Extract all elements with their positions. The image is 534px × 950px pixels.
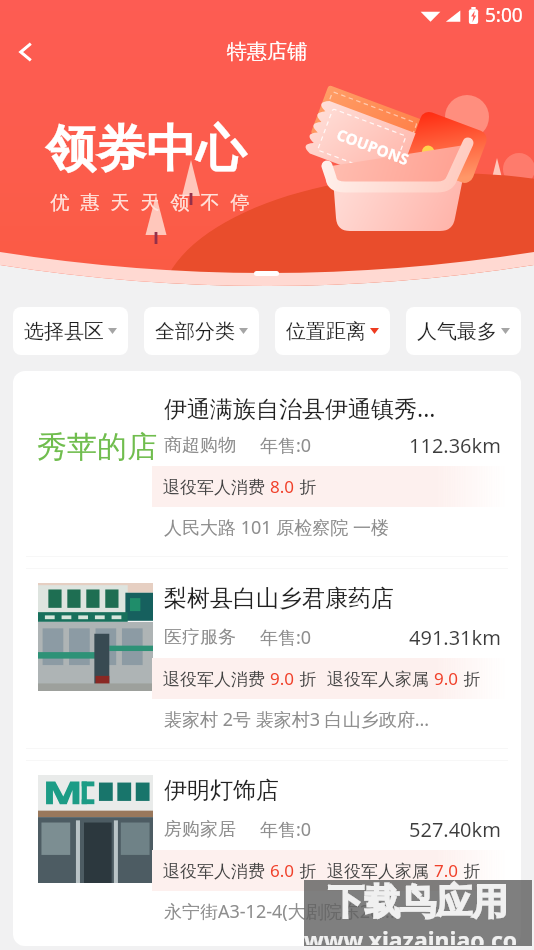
button[interactable]: 人气最多 [406,307,521,355]
staticText: 年售:0 [260,817,312,842]
staticText: 伊通满族自治县伊通镇秀... [164,392,436,423]
staticText: 491.31km [409,624,501,651]
staticText: 人气最多 [417,319,497,344]
staticText: 永宁街A3-12-4(大剧院东20... [164,899,395,924]
staticText: www.xiazainiao.com [304,924,532,945]
button[interactable]: 秀苹的店 [26,377,508,556]
staticText: 退役军人消费 [163,859,270,882]
staticText: 梨树县白山乡君康药店 [164,584,394,613]
staticText: 退役军人家属 [327,859,434,882]
staticText: 退役军人消费 [163,475,270,498]
staticText: 裴家村 2号 裴家村3 白山乡政府... [164,707,430,732]
staticText: 年售:0 [260,433,312,458]
staticText: 退役军人消费 [163,667,270,690]
button[interactable]: 退役军人消费 [26,761,508,940]
staticText: 全部分类 [155,319,235,344]
staticText: 折 [295,667,317,690]
staticText: 位置距离 [286,319,366,344]
staticText: 房购家居 [164,818,236,841]
button[interactable]: Back [4,30,48,74]
staticText: 5:00 [485,2,523,28]
staticText: 选择县区 [24,319,104,344]
staticText: 6.0 [270,859,295,882]
staticText: 伊明灯饰店 [164,776,279,805]
button[interactable]: 选择县区 [13,307,128,355]
button[interactable]: 退役军人消费 [26,569,508,748]
button[interactable]: 位置距离 [275,307,390,355]
staticText: 7.0 [434,859,459,882]
staticText: 折 [459,859,481,882]
staticText: 折 [295,859,317,882]
staticText: 527.40km [409,816,501,843]
staticText: 8.0 [270,475,295,498]
staticText: 112.36km [409,432,501,459]
staticText: 下载鸟应用 [328,879,508,924]
staticText: 领券中心 [46,118,246,181]
staticText: 特惠店铺 [227,39,307,64]
staticText: 折 [459,667,481,690]
staticText: 9.0 [434,667,459,690]
staticText: 优惠天天领不停 [45,191,255,215]
staticText: 医疗服务 [164,626,236,649]
staticText: 9.0 [270,667,295,690]
staticText: COUPONS [334,124,412,169]
staticText: 退役军人家属 [327,667,434,690]
button[interactable]: 全部分类 [144,307,259,355]
staticText: 折 [295,475,317,498]
staticText: 年售:0 [260,625,312,650]
staticText: 人民大路 101 原检察院 一楼 [164,515,389,540]
staticText: 商超购物 [164,434,236,457]
staticText: 秀苹的店 [37,428,157,466]
